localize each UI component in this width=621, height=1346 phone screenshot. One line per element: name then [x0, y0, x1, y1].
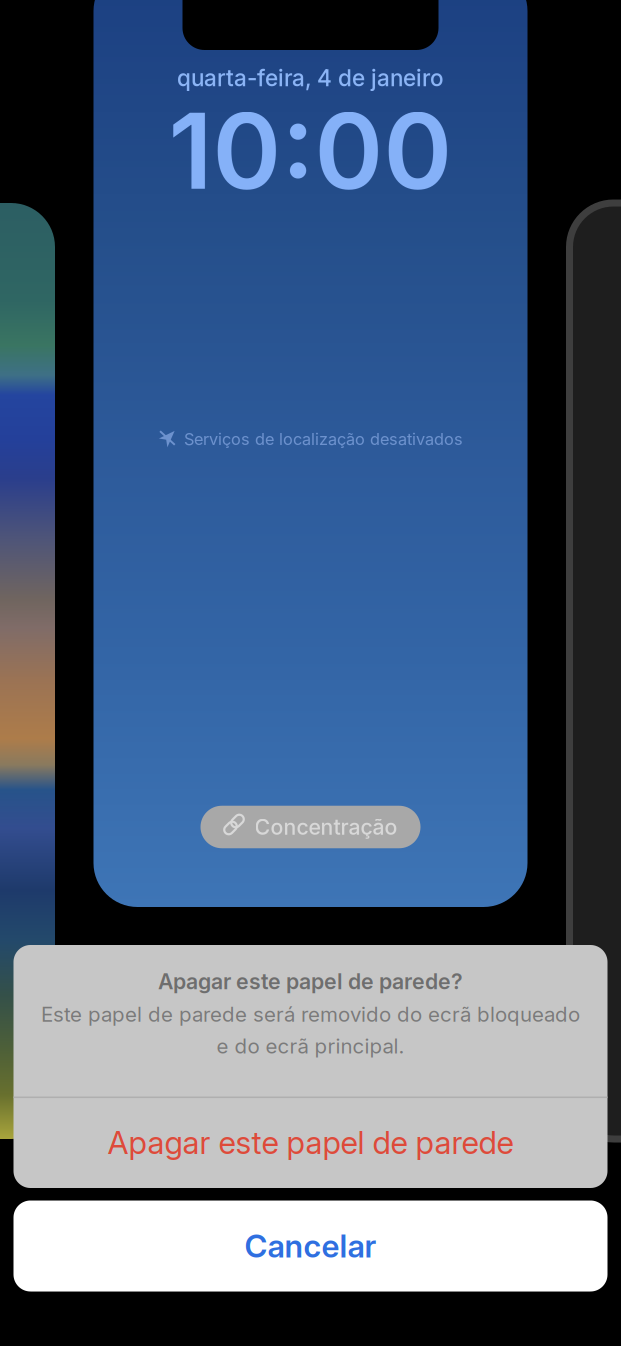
staticText: e do ecrã principal. — [216, 1034, 404, 1058]
button[interactable]: Papel de parede anterior — [0, 203, 55, 1139]
staticText: quarta-feira, 4 de janeiro — [177, 64, 444, 92]
staticText: Este papel de parede será removido do ec… — [41, 1002, 580, 1027]
staticText: Apagar este papel de parede — [107, 1123, 513, 1161]
button[interactable]: Cancelar — [13, 1200, 607, 1291]
staticText: Concentração — [254, 814, 397, 840]
button[interactable]: Papel de parede atual: quarta-feira, 4 d… — [93, 0, 527, 907]
button[interactable]: Apagar este papel de parede — [13, 1097, 607, 1188]
staticText: Cancelar — [244, 1227, 376, 1265]
button[interactable]: Papel de parede seguinte — [569, 203, 621, 1139]
staticText: 10:00 — [168, 88, 452, 214]
button[interactable]: Concentração — [200, 806, 420, 848]
staticText: Apagar este papel de parede? — [158, 969, 463, 994]
staticText: Serviços de localização desativados — [184, 429, 463, 449]
